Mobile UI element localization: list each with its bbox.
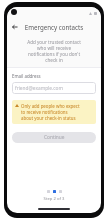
button[interactable]: friend@example.com — [12, 82, 96, 94]
button[interactable]: Page indicator — [53, 190, 56, 193]
staticText: friend@example.com — [15, 85, 63, 92]
button[interactable]: Continue — [12, 132, 96, 143]
staticText: Emergency contacts — [7, 23, 101, 31]
staticText: Add your trusted contact who will receiv… — [21, 39, 87, 63]
staticText: Only add people who expect to receive no… — [21, 103, 80, 121]
staticText: Continue — [44, 134, 65, 141]
staticText: Email address — [12, 73, 41, 79]
staticText: Step 2 of 3 — [7, 196, 101, 202]
button[interactable]: Back — [9, 21, 21, 33]
